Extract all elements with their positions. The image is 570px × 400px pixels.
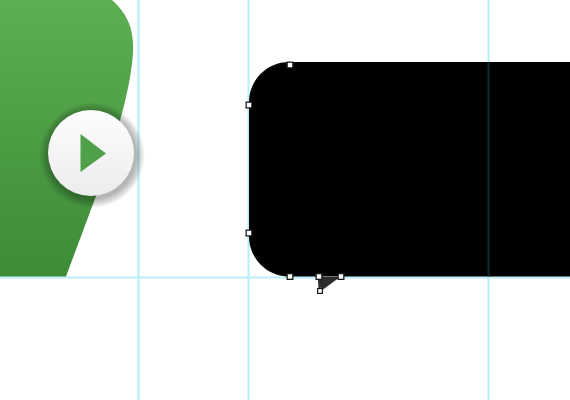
button[interactable]: Vector editing canvas — [0, 0, 570, 400]
